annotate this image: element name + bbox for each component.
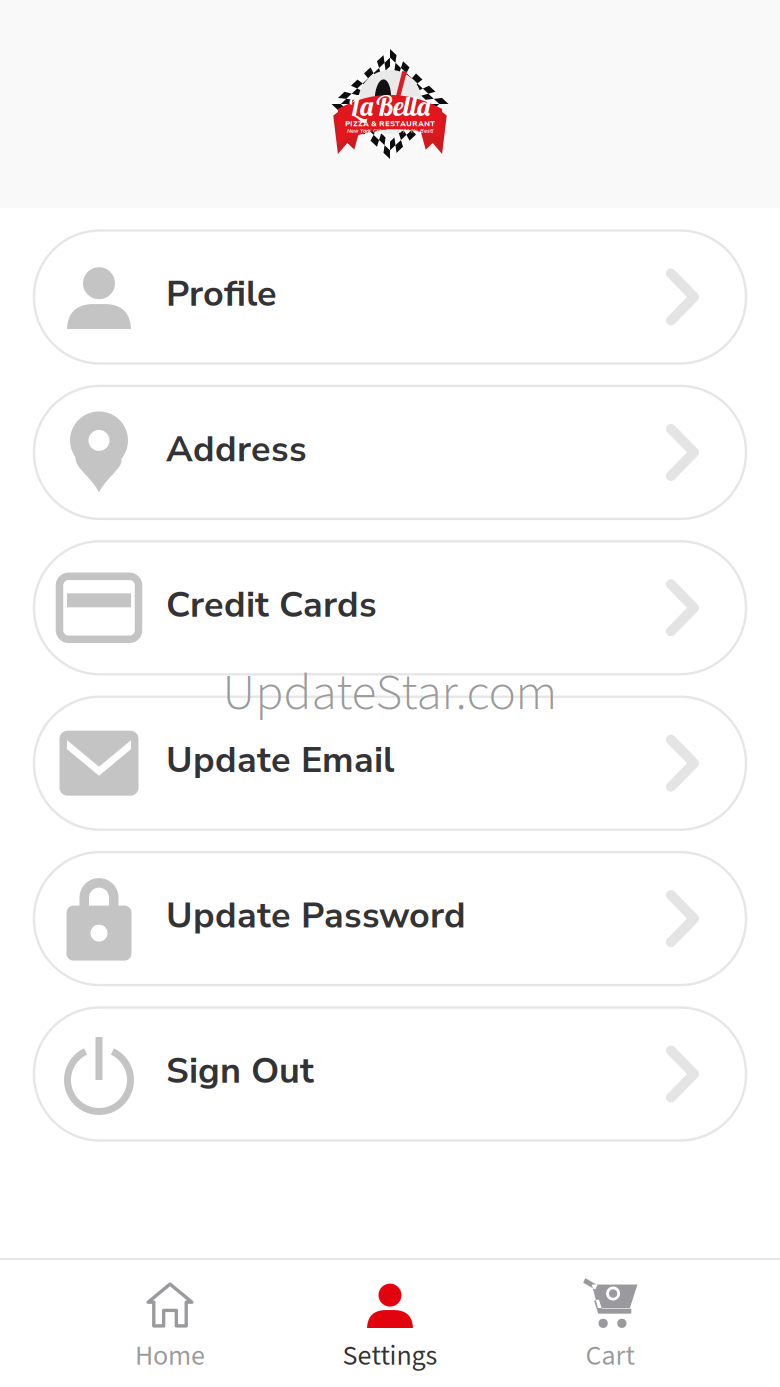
button[interactable]: Profile (34, 230, 746, 363)
button[interactable]: Credit Cards (34, 541, 746, 674)
staticText: Cart (585, 1336, 634, 1376)
staticText: Settings (342, 1336, 437, 1376)
staticText: Home (135, 1336, 205, 1376)
button[interactable]: Settings (280, 1249, 500, 1387)
button[interactable]: Update Email (34, 697, 746, 830)
staticText: New York City Pizza At Its Best! (347, 128, 433, 135)
button[interactable]: Address (34, 386, 746, 519)
staticText: Profile (166, 269, 277, 318)
staticText: Address (166, 425, 307, 474)
button[interactable]: Cart (500, 1249, 720, 1387)
staticText: UpdateStar.com (222, 656, 557, 730)
staticText: Credit Cards (166, 580, 377, 629)
staticText: Update Password (166, 891, 466, 940)
staticText: LaBella (348, 89, 432, 123)
staticText: Update Email (166, 736, 394, 785)
staticText: Sign Out (166, 1046, 314, 1095)
button[interactable]: Update Password (34, 852, 746, 985)
button[interactable]: Home (60, 1249, 280, 1387)
staticText: PIZZA & RESTAURANT (345, 119, 435, 129)
button[interactable]: Sign Out (34, 1007, 746, 1140)
